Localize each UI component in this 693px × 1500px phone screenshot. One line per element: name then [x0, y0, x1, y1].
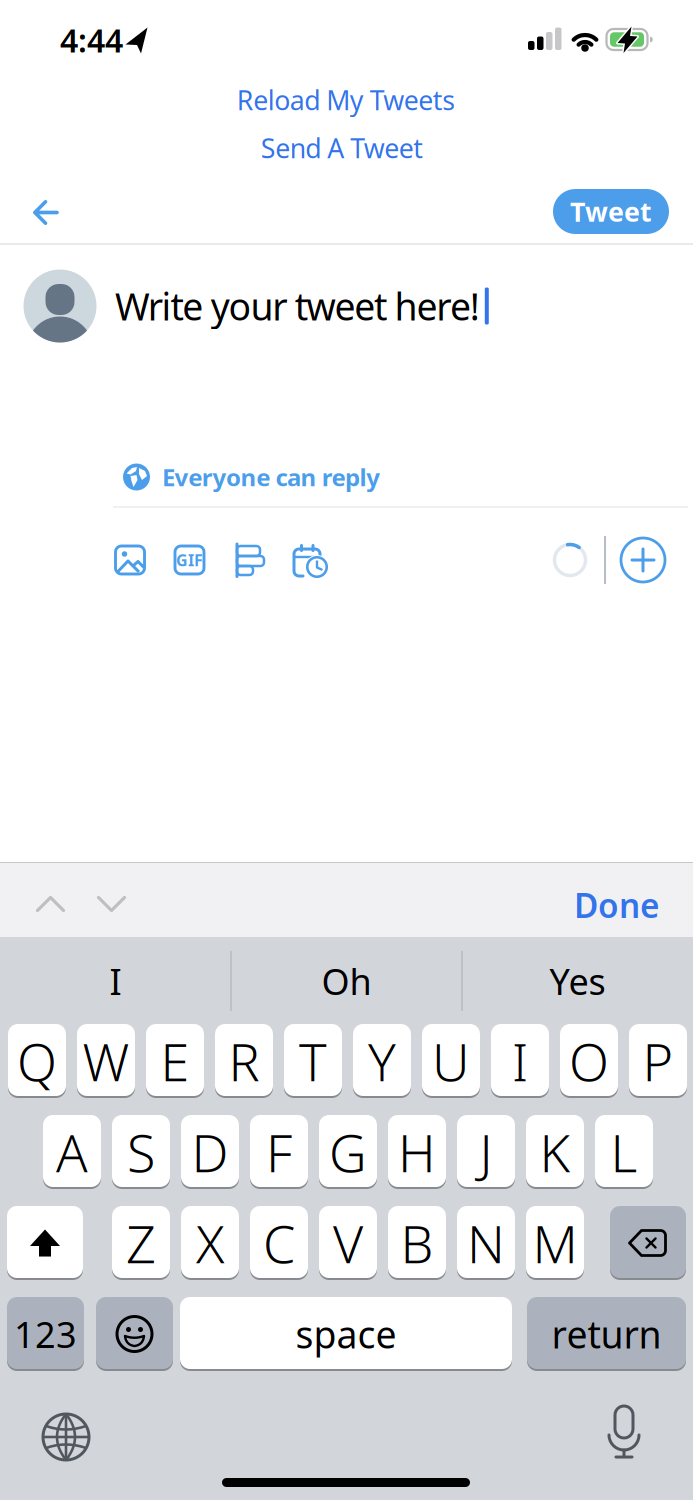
staticText: I	[109, 957, 121, 1005]
button[interactable]: Add another tweet	[621, 538, 665, 582]
staticText: P	[642, 1026, 673, 1096]
staticText: Yes	[549, 957, 605, 1005]
staticText: T	[299, 1026, 327, 1096]
button[interactable]: T	[284, 1024, 342, 1098]
button[interactable]: Dictate	[607, 1405, 641, 1461]
button[interactable]: return	[527, 1297, 686, 1371]
staticText: Send A Tweet	[261, 130, 423, 166]
button[interactable]: J	[457, 1115, 515, 1189]
staticText: Oh	[321, 957, 371, 1005]
staticText: space	[295, 1309, 396, 1359]
button[interactable]: Add poll	[230, 541, 268, 579]
button[interactable]: O	[560, 1024, 618, 1098]
button[interactable]: E	[146, 1024, 204, 1098]
staticText: H	[398, 1117, 436, 1187]
button[interactable]: P	[629, 1024, 687, 1098]
staticText: Everyone can reply	[162, 461, 380, 493]
staticText: R	[228, 1026, 259, 1096]
button[interactable]: Q	[8, 1024, 66, 1098]
staticText: I	[512, 1026, 528, 1096]
button[interactable]: D	[181, 1115, 239, 1189]
button[interactable]: Emoji	[96, 1297, 173, 1371]
button[interactable]: M	[526, 1206, 584, 1280]
staticText: O	[569, 1026, 609, 1096]
button[interactable]: W	[77, 1024, 135, 1098]
button[interactable]: G	[319, 1115, 377, 1189]
button[interactable]: Tweet	[553, 189, 669, 234]
button[interactable]: 123	[7, 1297, 84, 1371]
button[interactable]: Previous field	[35, 894, 65, 913]
button[interactable]: N	[457, 1206, 515, 1280]
staticText: K	[539, 1117, 570, 1187]
staticText: 4:44	[60, 19, 123, 61]
button[interactable]: F	[250, 1115, 308, 1189]
button[interactable]: X	[181, 1206, 239, 1280]
staticText: N	[467, 1208, 505, 1278]
button[interactable]: Back	[33, 200, 60, 226]
staticText: Reload My Tweets	[237, 82, 455, 118]
button[interactable]: B	[388, 1206, 446, 1280]
staticText: S	[127, 1117, 155, 1187]
staticText: 123	[14, 1310, 77, 1358]
staticText: D	[191, 1117, 228, 1187]
button[interactable]: Y	[353, 1024, 411, 1098]
button[interactable]: space	[180, 1297, 512, 1371]
staticText: U	[432, 1026, 470, 1096]
staticText: X	[196, 1208, 224, 1278]
staticText: C	[263, 1208, 295, 1278]
button[interactable]: Z	[112, 1206, 170, 1280]
button[interactable]: Schedule tweet	[290, 541, 330, 579]
staticText: M	[532, 1208, 577, 1278]
staticText: GIF	[176, 549, 203, 571]
staticText: Z	[126, 1208, 156, 1278]
button[interactable]: L	[595, 1115, 653, 1189]
button[interactable]: U	[422, 1024, 480, 1098]
button[interactable]: A	[43, 1115, 101, 1189]
button[interactable]: I	[491, 1024, 549, 1098]
button[interactable]: Shift	[7, 1206, 83, 1280]
button[interactable]: Delete	[610, 1206, 686, 1280]
staticText: V	[333, 1208, 363, 1278]
button[interactable]: Next field	[96, 894, 126, 913]
staticText: B	[400, 1208, 433, 1278]
staticText: F	[266, 1117, 292, 1187]
staticText: W	[82, 1026, 129, 1096]
button[interactable]: Yes	[477, 951, 677, 1011]
staticText: Done	[574, 883, 660, 927]
staticText: Write your tweet here!	[115, 281, 480, 331]
button[interactable]: Next keyboard	[42, 1413, 90, 1461]
button[interactable]: R	[215, 1024, 273, 1098]
button[interactable]: V	[319, 1206, 377, 1280]
button[interactable]: Done	[540, 883, 660, 927]
button[interactable]: Add GIF	[170, 541, 208, 579]
button[interactable]: Add photo	[111, 541, 149, 579]
button[interactable]: C	[250, 1206, 308, 1280]
staticText: Q	[17, 1026, 57, 1096]
staticText: Tweet	[570, 194, 652, 229]
staticText: return	[551, 1309, 661, 1359]
button[interactable]: S	[112, 1115, 170, 1189]
staticText: L	[610, 1117, 637, 1187]
button[interactable]: Reload My Tweets	[206, 80, 486, 120]
button[interactable]: Send A Tweet	[222, 128, 462, 168]
staticText: G	[329, 1117, 367, 1187]
staticText: A	[56, 1117, 88, 1187]
button[interactable]: I	[15, 951, 215, 1011]
button[interactable]: Everyone can reply	[123, 461, 423, 493]
staticText: E	[160, 1026, 189, 1096]
button[interactable]: H	[388, 1115, 446, 1189]
staticText: J	[479, 1117, 492, 1187]
button[interactable]: Oh	[246, 951, 446, 1011]
staticText: Y	[368, 1026, 396, 1096]
button[interactable]: K	[526, 1115, 584, 1189]
